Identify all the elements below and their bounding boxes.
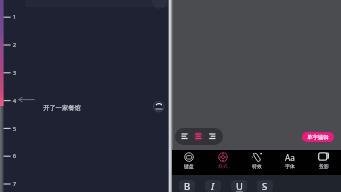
button[interactable] bbox=[175, 128, 223, 145]
button[interactable] bbox=[240, 150, 274, 176]
button[interactable]: 单字编辑 bbox=[302, 132, 334, 142]
staticText: S bbox=[262, 180, 268, 192]
button[interactable]: U bbox=[231, 180, 247, 192]
button[interactable] bbox=[206, 150, 240, 176]
button[interactable] bbox=[273, 150, 307, 176]
staticText: 特效 bbox=[245, 163, 269, 169]
staticText: 开了一家餐馆 bbox=[43, 104, 81, 112]
staticText: B bbox=[184, 180, 191, 192]
button[interactable]: B bbox=[179, 180, 195, 192]
staticText: I bbox=[211, 180, 215, 192]
staticText: U bbox=[236, 180, 243, 192]
staticText: 4 bbox=[11, 97, 18, 105]
staticText: 1 bbox=[11, 13, 18, 21]
staticText: Aa bbox=[282, 152, 298, 163]
button[interactable]: S bbox=[257, 180, 273, 192]
staticText: 样式 bbox=[211, 163, 235, 169]
staticText: 5 bbox=[11, 125, 18, 133]
staticText: 单字编辑 bbox=[307, 134, 329, 141]
staticText: 2 bbox=[11, 41, 18, 49]
other: App badge bbox=[153, 101, 164, 112]
staticText: 投影 bbox=[312, 163, 336, 169]
button[interactable] bbox=[307, 150, 341, 176]
button[interactable] bbox=[172, 150, 206, 176]
button[interactable]: I bbox=[205, 180, 221, 192]
staticText: 3 bbox=[11, 69, 18, 77]
staticText: 字体 bbox=[278, 163, 302, 169]
staticText: 7 bbox=[11, 180, 18, 188]
staticText: 键盘 bbox=[177, 163, 201, 169]
staticText: 6 bbox=[11, 152, 18, 160]
